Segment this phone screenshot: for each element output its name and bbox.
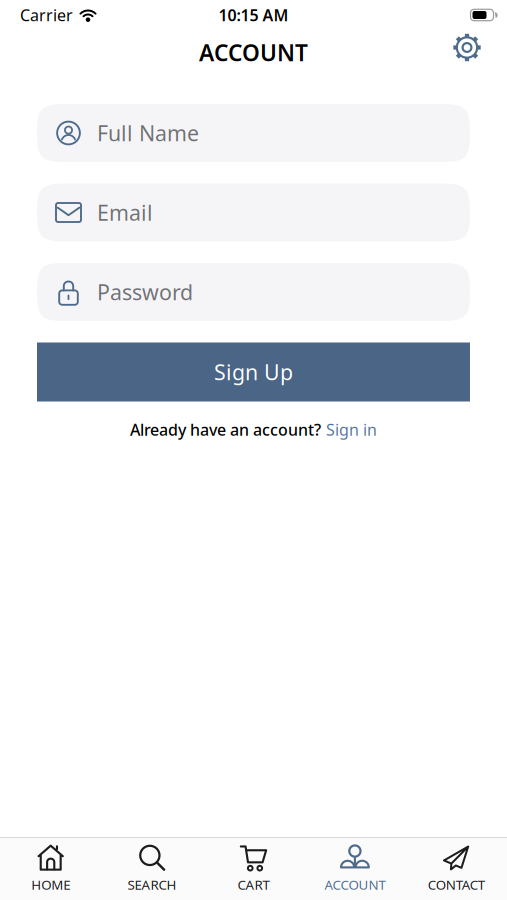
staticText: SEARCH	[128, 876, 177, 893]
button[interactable]: SEARCH	[101, 838, 203, 900]
button[interactable]: CONTACT	[406, 838, 507, 900]
staticText: Sign Up	[214, 358, 293, 386]
staticText: Full Name	[97, 119, 199, 147]
button[interactable]: Sign Up	[37, 342, 470, 401]
button[interactable]: HOME	[0, 838, 101, 900]
button[interactable]: CART	[203, 838, 304, 900]
staticText: Already have an account?	[130, 419, 321, 440]
staticText: Carrier	[20, 4, 73, 26]
staticText: ACCOUNT	[199, 37, 308, 67]
staticText: Sign in	[326, 419, 377, 440]
staticText: CART	[237, 876, 269, 893]
button[interactable]: Password	[37, 263, 470, 321]
staticText: CONTACT	[428, 876, 485, 893]
staticText: Password	[97, 278, 193, 306]
staticText: 10:15 AM	[218, 4, 288, 26]
button[interactable]: ACCOUNT	[304, 838, 406, 900]
button[interactable]: Full Name	[37, 104, 470, 162]
button[interactable]: Settings	[452, 32, 482, 62]
button[interactable]: Sign in	[326, 419, 377, 440]
staticText: ACCOUNT	[324, 876, 385, 893]
button[interactable]: Email	[37, 183, 470, 241]
staticText: HOME	[31, 876, 70, 893]
staticText: Email	[97, 198, 153, 227]
